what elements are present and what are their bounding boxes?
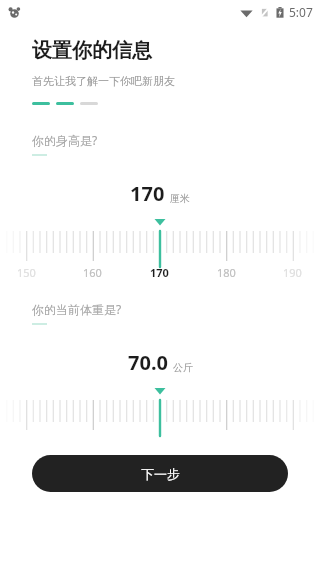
- staticText: 5:07: [289, 4, 313, 20]
- staticText: 设置你的信息: [32, 38, 152, 63]
- button[interactable]: Value picker ruler: [0, 217, 320, 281]
- staticText: 公斤: [173, 361, 193, 374]
- staticText: 160: [83, 265, 102, 280]
- staticText: 你的身高是?: [32, 132, 98, 148]
- staticText: 70.0: [128, 349, 168, 376]
- staticText: 170: [130, 180, 165, 207]
- staticText: 180: [217, 265, 236, 280]
- button[interactable]: 下一步: [32, 455, 288, 492]
- staticText: 你的当前体重是?: [32, 301, 122, 317]
- staticText: 下一步: [141, 466, 180, 482]
- button[interactable]: Value picker ruler: [0, 386, 320, 438]
- staticText: 190: [283, 265, 302, 280]
- staticText: 首先让我了解一下你吧新朋友: [32, 74, 175, 88]
- other: App icon: [8, 6, 21, 19]
- staticText: 厘米: [170, 192, 190, 205]
- staticText: 150: [17, 265, 36, 280]
- staticText: 170: [150, 265, 169, 280]
